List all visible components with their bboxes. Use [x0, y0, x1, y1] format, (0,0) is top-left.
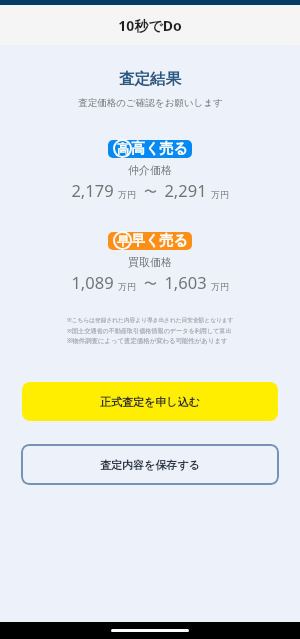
button[interactable]: 10秒でDo — [0, 5, 300, 45]
staticText: 〜 — [144, 183, 157, 199]
staticText: 1,603 — [164, 271, 207, 293]
staticText: ※こちらは登録された内容より導き出された目安金額となります — [67, 316, 234, 324]
staticText: 2,179 — [71, 179, 114, 201]
staticText: ※国土交通省の不動産取引価格情報のデータを利用して算出 — [67, 326, 232, 334]
staticText: 〜 — [144, 275, 157, 291]
button[interactable]: Home — [111, 629, 189, 632]
staticText: 万円 — [118, 189, 136, 200]
staticText: 高 — [117, 141, 129, 156]
staticText: 2,291 — [164, 179, 207, 201]
staticText: 万円 — [211, 281, 229, 292]
staticText: 査定結果 — [119, 69, 181, 89]
staticText: 早く売る — [131, 232, 188, 250]
staticText: ※物件調査によって査定価格が変わる可能性があります — [67, 336, 228, 345]
button[interactable]: 早く売る — [108, 231, 192, 250]
staticText: 1,089 — [71, 271, 114, 293]
staticText: 仲介価格 — [128, 163, 172, 177]
staticText: 万円 — [211, 189, 229, 200]
staticText: 万円 — [118, 281, 136, 292]
button[interactable]: 高く売る — [108, 139, 192, 158]
button[interactable]: 査定内容を保存する — [21, 444, 279, 485]
staticText: 査定価格のご確認をお願いします — [78, 97, 223, 109]
staticText: 早 — [117, 233, 129, 248]
staticText: 高く売る — [131, 140, 188, 158]
staticText: 査定内容を保存する — [100, 458, 200, 472]
staticText: 買取価格 — [128, 255, 172, 269]
staticText: 10秒でDo — [118, 16, 182, 35]
staticText: 正式査定を申し込む — [100, 395, 200, 409]
button[interactable]: 正式査定を申し込む — [22, 382, 278, 421]
